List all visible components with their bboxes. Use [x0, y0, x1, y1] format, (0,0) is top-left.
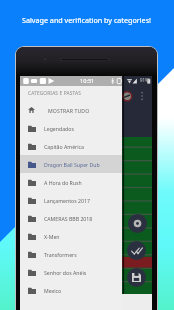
staticText: Legendados: [44, 125, 74, 132]
staticText: A Hora do Rush: [44, 179, 82, 186]
staticText: 10:51: [80, 77, 95, 85]
staticText: Lançamentos 2017: [44, 197, 90, 204]
staticText: Transformers: [44, 251, 77, 258]
button[interactable]: Transformers: [20, 245, 122, 263]
button[interactable]: Mexico: [20, 281, 122, 299]
staticText: Mexico: [44, 287, 62, 294]
button[interactable]: Save: [127, 268, 146, 287]
button[interactable]: MOSTRAR TUDO: [20, 101, 122, 119]
staticText: X-Men: [44, 233, 60, 240]
staticText: CAMERAS BBB 2018: [44, 215, 93, 222]
button[interactable]: Capitão América: [20, 137, 122, 155]
button[interactable]: Dragon Ball Super Dub: [20, 155, 122, 173]
button[interactable]: Lançamentos 2017: [20, 191, 122, 209]
button[interactable]: A Hora do Rush: [20, 173, 122, 191]
button[interactable]: Settings: [128, 214, 147, 233]
staticText: Salvage and verification by categories!: [22, 15, 152, 25]
staticText: Capitão América: [44, 143, 84, 150]
button[interactable]: Mark watched: [127, 241, 146, 260]
staticText: Dragon Ball Super Dub: [44, 161, 100, 168]
staticText: Senhor dos Anéis: [44, 269, 87, 276]
staticText: 91%: [140, 77, 149, 83]
staticText: CATEGORIAS E PASTAS: [28, 90, 82, 97]
button[interactable]: CAMERAS BBB 2018: [20, 209, 122, 227]
staticText: MOSTRAR TUDO: [48, 107, 90, 114]
button[interactable]: X-Men: [20, 227, 122, 245]
button[interactable]: Senhor dos Anéis: [20, 263, 122, 281]
button[interactable]: Legendados: [20, 119, 122, 137]
